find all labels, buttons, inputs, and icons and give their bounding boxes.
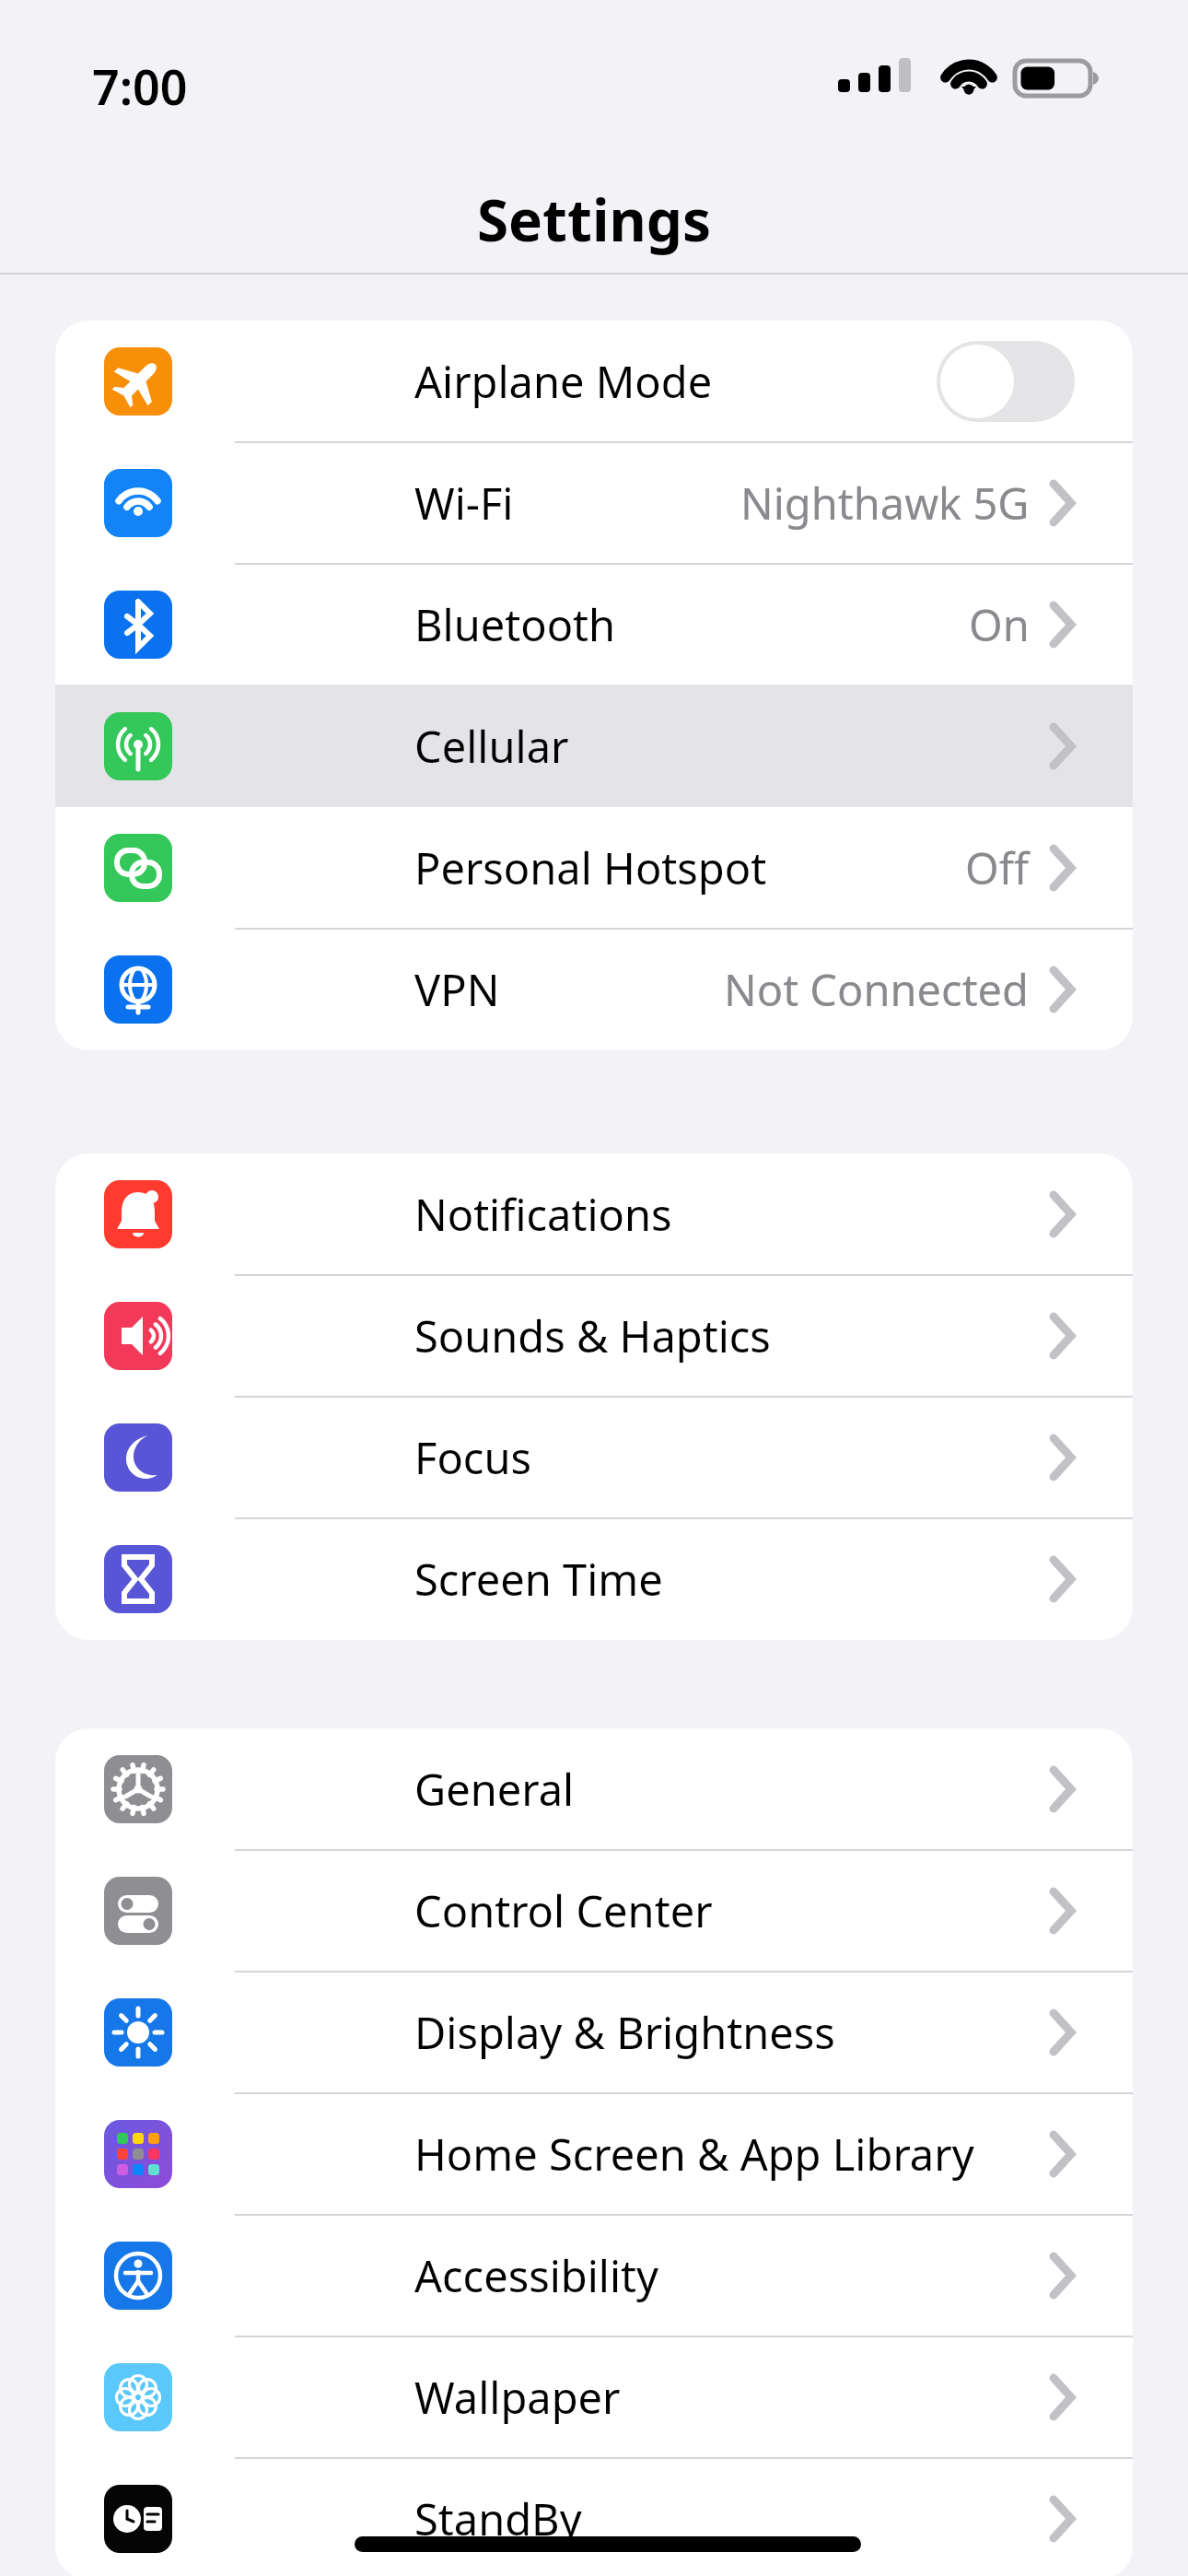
- button[interactable]: Sounds & Haptics: [55, 1275, 1133, 1397]
- button[interactable]: Control Center: [55, 1850, 1133, 1972]
- staticText: Home Screen & App Library: [414, 2125, 974, 2184]
- button[interactable]: Display & Brightness: [55, 1972, 1133, 2093]
- staticText: Notifications: [414, 1185, 672, 1244]
- staticText: General: [414, 1760, 575, 1819]
- button[interactable]: Home Screen & App Library: [55, 2093, 1133, 2215]
- staticText: Screen Time: [414, 1550, 663, 1609]
- button[interactable]: Bluetooth: [55, 564, 1133, 685]
- staticText: StandBy: [414, 2489, 582, 2548]
- button[interactable]: Accessibility: [55, 2215, 1133, 2336]
- staticText: VPN: [414, 960, 500, 1019]
- button[interactable]: Personal Hotspot: [55, 807, 1133, 929]
- staticText: Bluetooth: [414, 595, 616, 654]
- button[interactable]: General: [55, 1728, 1133, 1850]
- button[interactable]: Airplane Mode toggle: [937, 341, 1075, 422]
- staticText: Personal Hotspot: [414, 838, 767, 897]
- staticText: Nighthawk 5G: [740, 474, 1030, 533]
- button[interactable]: Screen Time: [55, 1518, 1133, 1640]
- button[interactable]: Cellular: [55, 685, 1133, 807]
- staticText: Control Center: [414, 1881, 713, 1940]
- staticText: Not Connected: [724, 960, 1030, 1019]
- button[interactable]: Wallpaper: [55, 2336, 1133, 2458]
- staticText: Display & Brightness: [414, 2003, 835, 2062]
- staticText: 7:00: [92, 53, 188, 119]
- button[interactable]: VPN: [55, 929, 1133, 1050]
- button[interactable]: Focus: [55, 1397, 1133, 1518]
- staticText: On: [969, 595, 1030, 654]
- button[interactable]: StandBy: [55, 2458, 1133, 2576]
- staticText: Sounds & Haptics: [414, 1306, 771, 1365]
- staticText: Settings: [0, 181, 1188, 258]
- button[interactable]: Wi-Fi: [55, 442, 1133, 564]
- staticText: Off: [965, 838, 1030, 897]
- staticText: Wallpaper: [414, 2368, 621, 2427]
- staticText: Focus: [414, 1428, 531, 1487]
- staticText: Cellular: [414, 717, 569, 776]
- button[interactable]: Notifications: [55, 1153, 1133, 1275]
- button[interactable]: Airplane Mode: [55, 321, 1133, 442]
- staticText: Wi-Fi: [414, 474, 514, 533]
- staticText: Accessibility: [414, 2246, 659, 2305]
- staticText: Airplane Mode: [414, 352, 713, 411]
